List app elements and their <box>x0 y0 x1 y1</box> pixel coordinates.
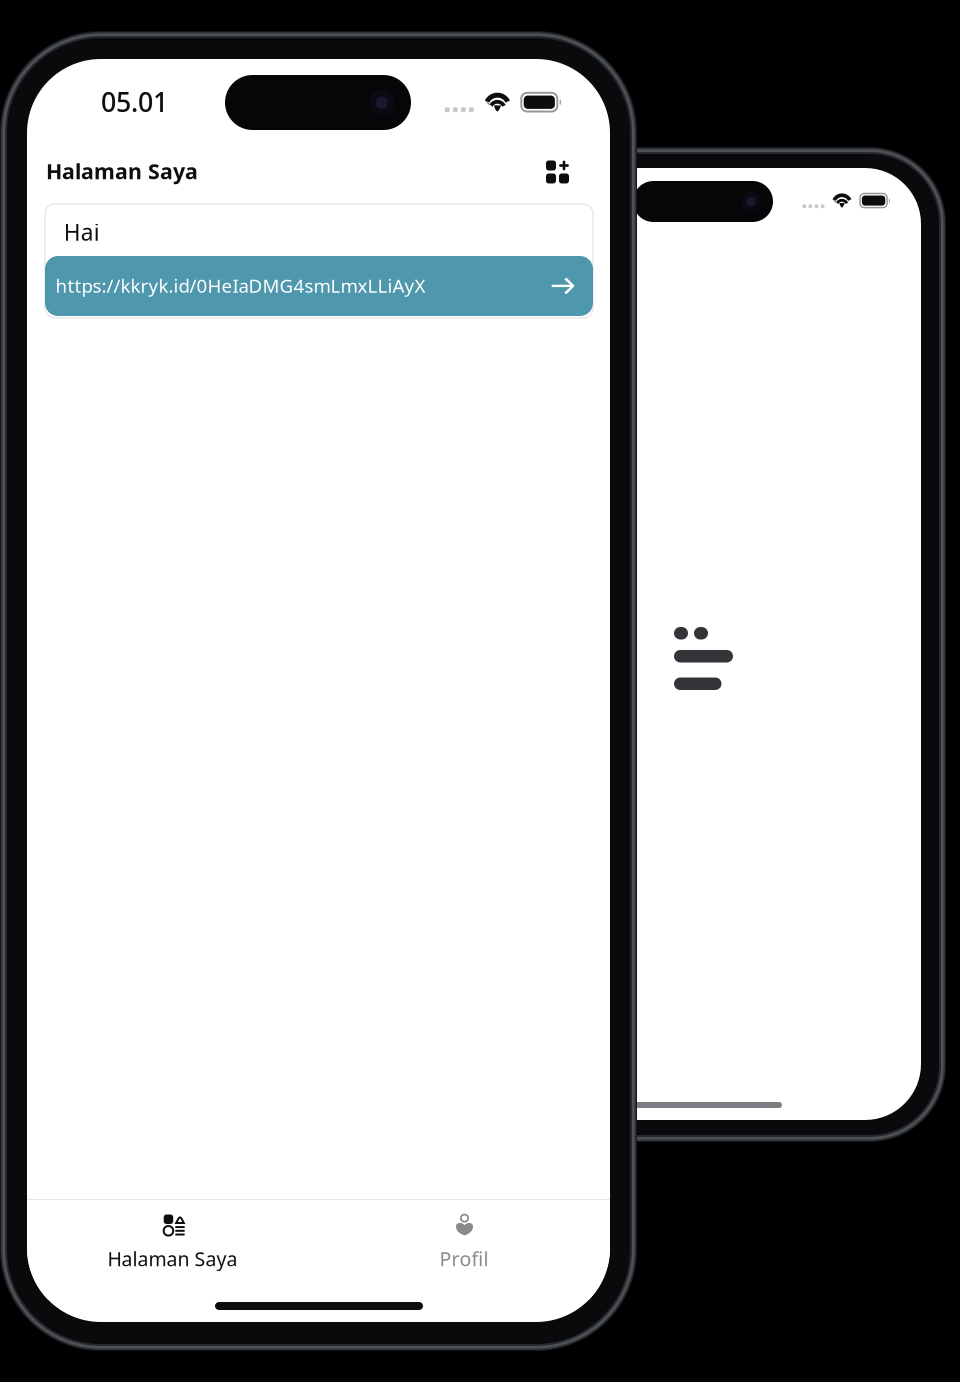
staticText: 05.01 <box>101 83 168 120</box>
button[interactable]: Halaman Saya <box>27 1200 318 1300</box>
staticText: Profil <box>439 1245 488 1272</box>
button[interactable]: https://kkryk.id/0HeIaDMG4smLmxLLiAyX <box>45 256 593 316</box>
button[interactable]: Profil <box>318 1200 610 1300</box>
staticText: Halaman Saya <box>46 156 198 186</box>
staticText: Hai <box>64 217 100 247</box>
staticText: https://kkryk.id/0HeIaDMG4smLmxLLiAyX <box>55 273 425 298</box>
button[interactable]: Halaman Saya <box>46 151 206 191</box>
staticText: Halaman Saya <box>107 1245 237 1272</box>
button[interactable]: Add shortcut <box>530 145 571 186</box>
